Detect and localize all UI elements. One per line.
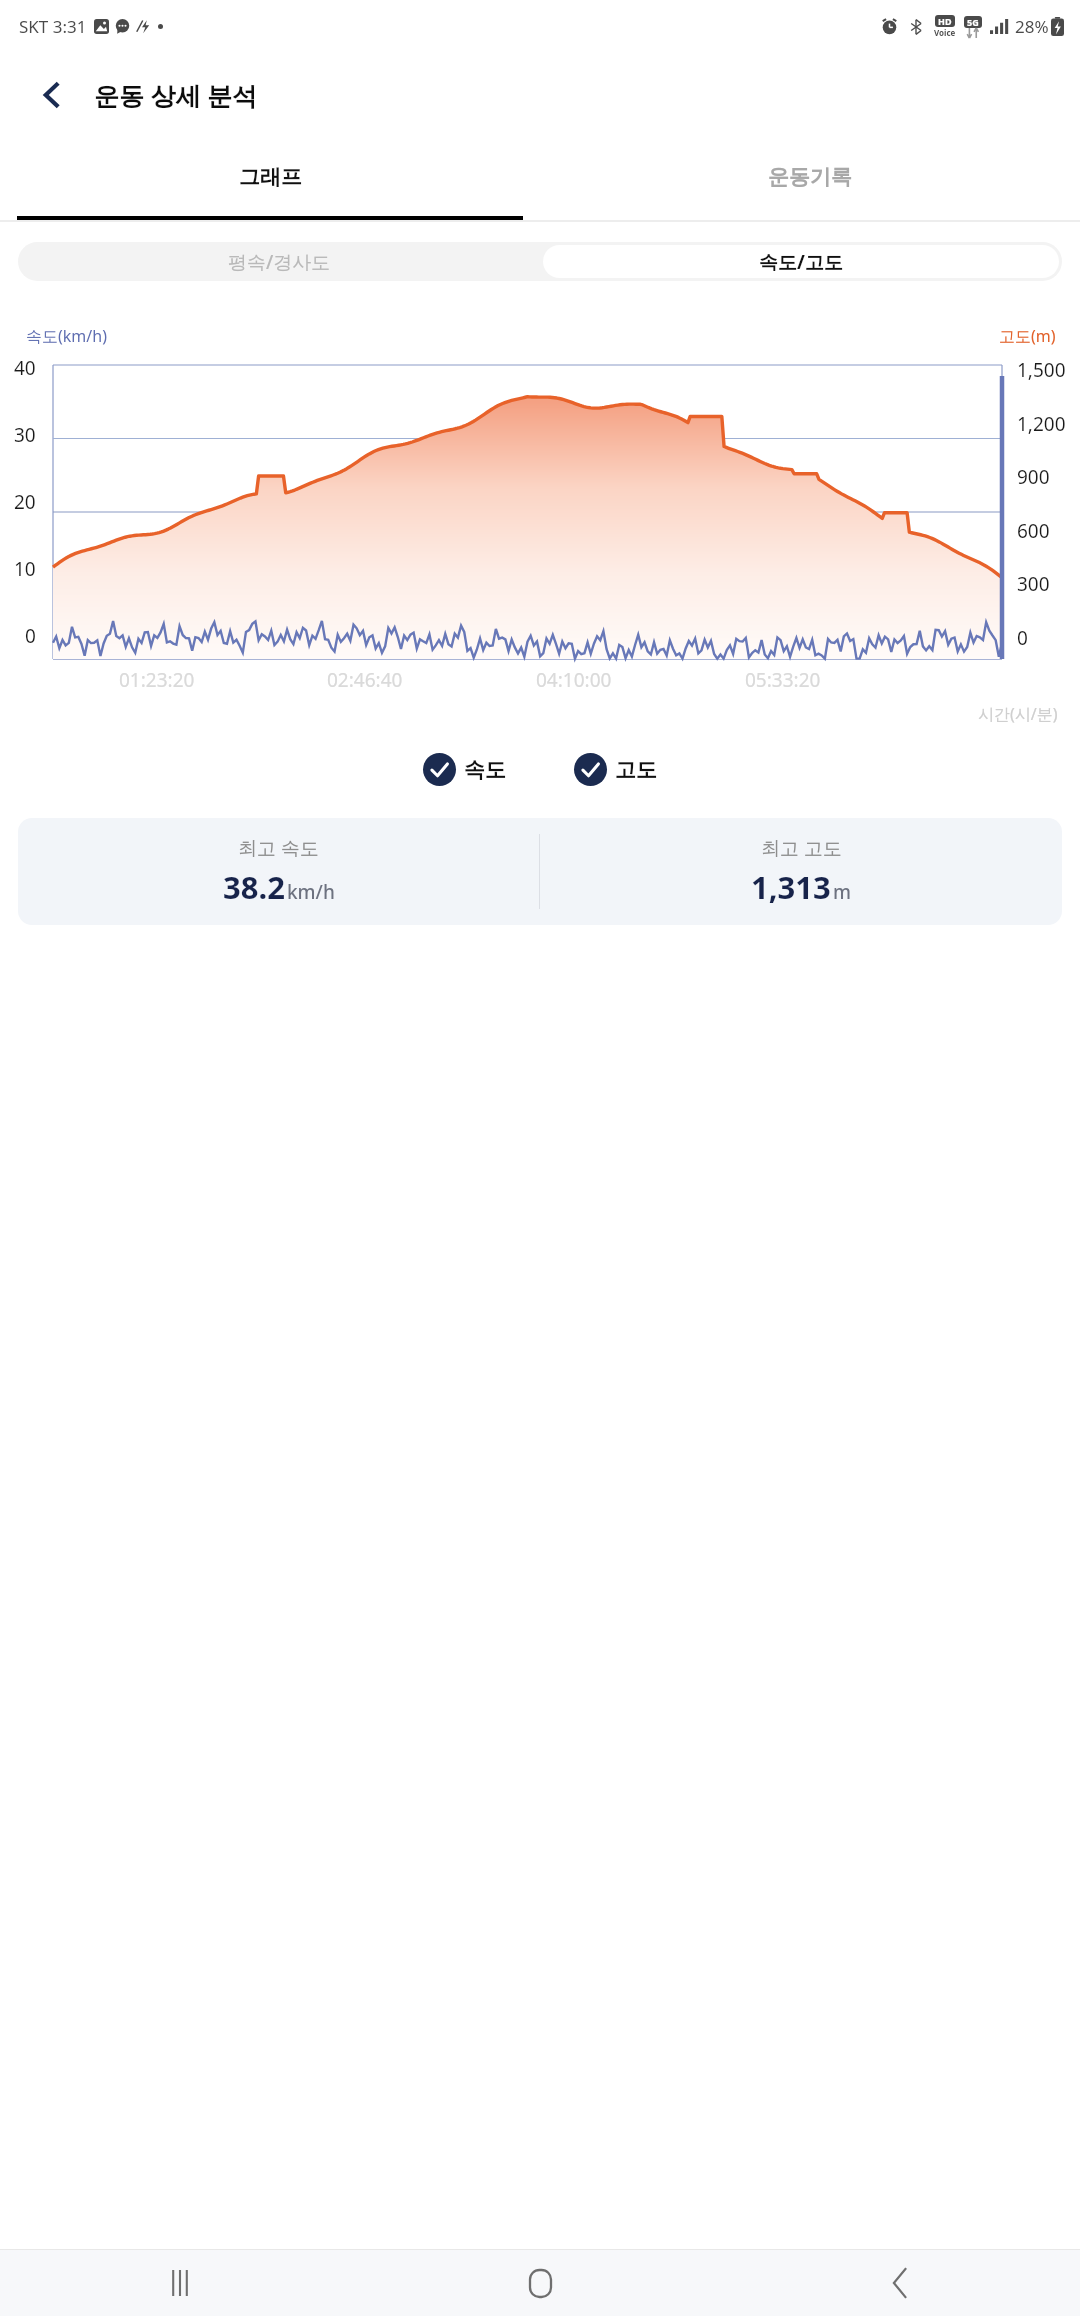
staticText: 10 [14, 556, 36, 582]
staticText: 5G [967, 16, 979, 28]
button[interactable]: 그래프 [0, 138, 540, 216]
staticText: 01:23:20 [119, 667, 195, 693]
button[interactable]: Recent apps [0, 2250, 360, 2316]
staticText: 속도 [464, 757, 506, 783]
button[interactable]: 속도/고도 [543, 245, 1059, 278]
staticText: SKT 3:31 [19, 15, 87, 38]
staticText: 1,200 [1017, 411, 1066, 437]
button[interactable]: Back [720, 2250, 1080, 2316]
staticText: 900 [1017, 464, 1050, 490]
staticText: 0 [1017, 625, 1028, 651]
staticText: 40 [14, 355, 36, 381]
staticText: 고도(m) [999, 325, 1056, 347]
staticText: 1,500 [1017, 357, 1066, 383]
staticText: 300 [1017, 571, 1050, 597]
staticText: 38.2 [223, 866, 285, 908]
staticText: 평속/경사도 [228, 249, 331, 275]
staticText: 20 [14, 489, 36, 515]
button[interactable]: Back [26, 69, 78, 121]
staticText: 그래프 [239, 164, 302, 190]
button[interactable]: 고도 [574, 753, 657, 786]
staticText: 600 [1017, 518, 1050, 544]
button[interactable]: Home [360, 2250, 720, 2316]
button[interactable]: 최고 속도 [18, 818, 1062, 925]
staticText: 0 [25, 623, 36, 649]
staticText: 02:46:40 [327, 667, 403, 693]
staticText: 시간(시/분) [978, 703, 1058, 725]
button[interactable]: 평속/경사도 [18, 242, 540, 281]
button[interactable]: 운동기록 [540, 138, 1080, 216]
staticText: 30 [14, 422, 36, 448]
staticText: 1,313 [751, 866, 831, 908]
staticText: 최고 고도 [761, 835, 842, 861]
staticText: 28% [1015, 15, 1049, 38]
staticText: 최고 속도 [238, 835, 319, 861]
staticText: Voice [934, 27, 956, 38]
staticText: 운동기록 [768, 164, 852, 190]
staticText: km/h [287, 879, 335, 905]
staticText: m [833, 879, 851, 905]
button[interactable]: 속도 [423, 753, 506, 786]
staticText: 04:10:00 [536, 667, 612, 693]
staticText: 고도 [615, 757, 657, 783]
staticText: 운동 상세 분석 [94, 78, 258, 112]
staticText: 05:33:20 [745, 667, 821, 693]
staticText: HD [938, 15, 952, 27]
staticText: 속도/고도 [759, 249, 843, 275]
staticText: 속도(km/h) [26, 325, 107, 347]
